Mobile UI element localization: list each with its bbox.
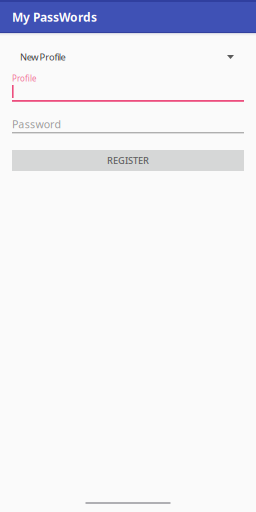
button[interactable]: New Profile bbox=[12, 46, 244, 68]
staticText: My PassWords bbox=[12, 9, 97, 25]
button[interactable]: REGISTER bbox=[12, 150, 244, 171]
staticText: Profile bbox=[12, 73, 37, 84]
staticText: Password bbox=[12, 117, 61, 131]
button[interactable]: Profile bbox=[12, 73, 244, 102]
staticText: New Profile bbox=[20, 51, 65, 63]
staticText: REGISTER bbox=[107, 154, 149, 167]
button[interactable]: Password bbox=[12, 117, 244, 134]
